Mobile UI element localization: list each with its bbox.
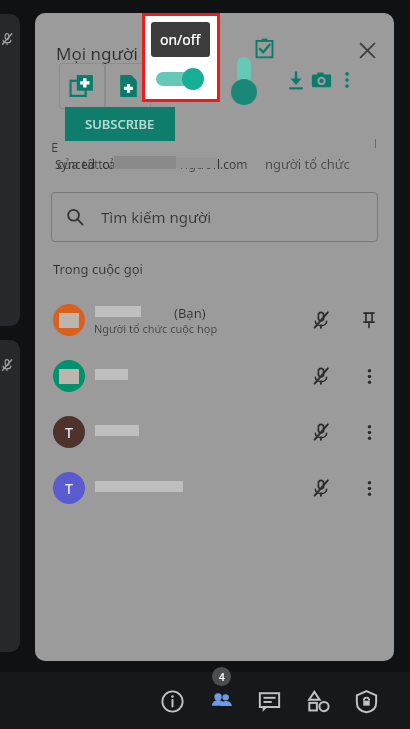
staticText: 4 [219,670,225,684]
staticText: T [65,479,73,498]
button[interactable]: Camera [304,63,338,97]
button[interactable]: (Bạn) [35,292,394,348]
button[interactable]: Mute [305,304,337,336]
button[interactable]: More options [353,416,385,448]
button[interactable]: SUBSCRIBE [65,107,175,141]
staticText: của tất cả [57,155,116,173]
button[interactable]: Add note [105,63,151,109]
button[interactable]: Mute [305,416,337,448]
staticText: người [180,155,217,173]
button[interactable]: Download [279,63,313,97]
staticText: Mọi người [56,42,138,65]
staticText: Synced to: [55,156,113,172]
staticText: Trong cuộc gọi [53,260,143,278]
button[interactable]: Close [348,31,386,69]
button[interactable]: T [35,404,394,460]
button[interactable]: Mute [305,472,337,504]
staticText: on/off [160,30,201,49]
button[interactable]: More options [330,63,364,97]
staticText: l.com [217,156,248,172]
staticText: (Bạn) [174,304,206,322]
button[interactable]: Host controls [344,676,388,726]
button[interactable]: Pin [353,304,385,336]
staticText: SUBSCRIBE [85,115,155,133]
staticText: Tìm kiếm người [101,207,212,227]
button[interactable]: People [199,676,243,726]
button[interactable]: Tìm kiếm người [51,192,378,242]
button[interactable]: Add people [59,63,105,109]
button[interactable]: Activities [296,676,340,726]
staticText: người tổ chức [265,155,350,173]
button[interactable]: More options [353,360,385,392]
button[interactable]: Checklist [247,31,281,65]
button[interactable]: T [35,460,394,516]
button[interactable]: Meeting details [150,676,194,726]
button[interactable]: Mute [35,348,394,404]
staticText: Người tổ chức cuộc họp [94,321,218,336]
staticText: E [51,138,59,156]
button[interactable]: Mute [305,360,337,392]
button[interactable]: Chat [247,676,291,726]
staticText: T [65,423,73,442]
button[interactable]: More options [353,472,385,504]
